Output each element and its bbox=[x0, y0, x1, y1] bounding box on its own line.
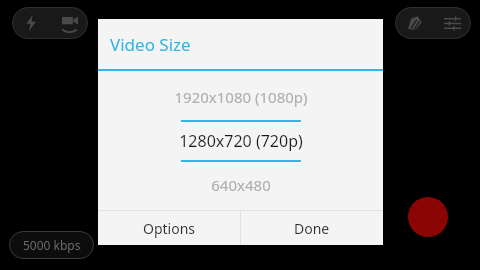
button[interactable]: 1280x720 (720p) bbox=[98, 122, 383, 160]
button[interactable]: 640x480 bbox=[98, 170, 383, 200]
button[interactable]: Options bbox=[98, 211, 240, 245]
button[interactable]: Settings bbox=[433, 7, 471, 39]
staticText: 1280x720 (720p) bbox=[179, 130, 303, 152]
staticText: Options bbox=[143, 219, 196, 238]
button[interactable]: 5000 kbps bbox=[9, 231, 94, 259]
staticText: 640x480 bbox=[211, 175, 271, 195]
button[interactable]: Done bbox=[241, 211, 383, 245]
button[interactable]: Record bbox=[408, 197, 448, 237]
staticText: 1920x1080 (1080p) bbox=[174, 87, 308, 107]
button[interactable]: 1920x1080 (1080p) bbox=[98, 81, 383, 113]
button[interactable]: Scene mode bbox=[395, 7, 433, 39]
button[interactable]: Flash bbox=[12, 7, 50, 39]
button[interactable]: Switch camera bbox=[50, 7, 88, 39]
staticText: Done bbox=[294, 219, 330, 238]
staticText: 5000 kbps bbox=[23, 237, 81, 253]
staticText: Video Size bbox=[110, 33, 191, 56]
